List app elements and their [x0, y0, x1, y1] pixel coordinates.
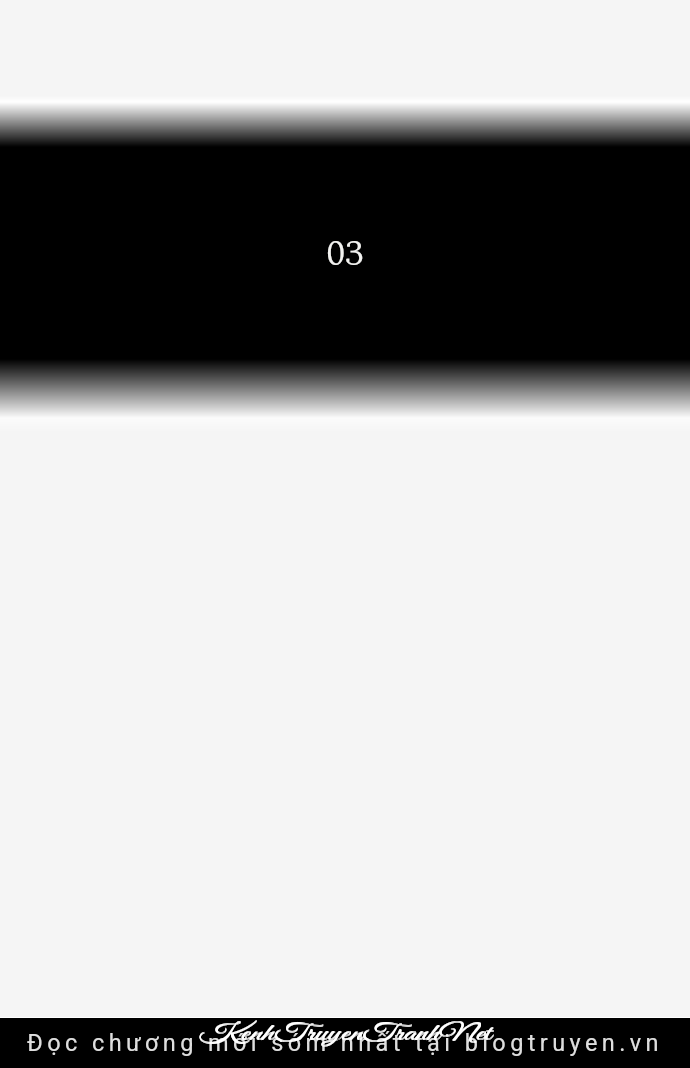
staticText: KenhTruyenTranhNet	[0, 1021, 690, 1049]
button[interactable]: Đọc chương mới sớm nhất tại blogtruyen.v…	[0, 1018, 690, 1068]
staticText: Đọc chương mới sớm nhất tại blogtruyen.v…	[0, 1029, 690, 1057]
staticText: KenhTruyenTranhNet	[0, 1020, 690, 1048]
button[interactable]: Trang truyện 03	[0, 0, 690, 1068]
staticText: 03	[0, 226, 690, 282]
